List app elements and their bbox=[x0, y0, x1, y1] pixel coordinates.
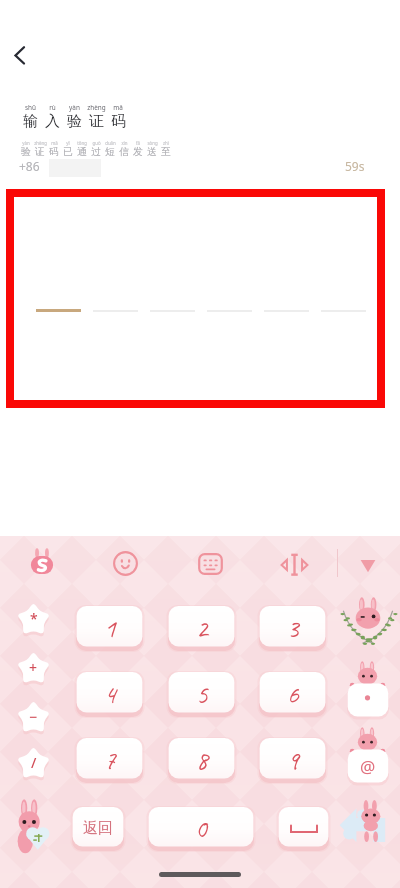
staticText: guò bbox=[92, 140, 101, 146]
staticText: 5 bbox=[196, 678, 208, 711]
staticText: 输 bbox=[23, 112, 38, 131]
staticText: − bbox=[29, 707, 38, 726]
staticText: 码 bbox=[49, 146, 59, 158]
staticText: yǐ bbox=[66, 140, 70, 146]
button[interactable]: 8 bbox=[168, 738, 235, 782]
staticText: * bbox=[30, 609, 38, 628]
staticText: xìn bbox=[121, 140, 128, 146]
button[interactable] bbox=[93, 274, 138, 312]
staticText: 信 bbox=[119, 146, 129, 158]
staticText: sòng bbox=[147, 140, 158, 146]
button[interactable]: 1 bbox=[76, 606, 143, 650]
staticText: + bbox=[29, 658, 38, 677]
staticText: fā bbox=[136, 140, 140, 146]
button[interactable]: 4 bbox=[76, 672, 143, 716]
staticText: duǎn bbox=[105, 140, 116, 146]
staticText: 9 bbox=[287, 744, 299, 777]
staticText: zhèng bbox=[87, 103, 106, 112]
staticText: mǎ bbox=[51, 140, 58, 146]
button[interactable] bbox=[36, 274, 81, 312]
staticText: mǎ bbox=[113, 103, 123, 112]
button[interactable]: 0 bbox=[148, 807, 254, 850]
button[interactable] bbox=[207, 274, 252, 312]
staticText: 4 bbox=[104, 678, 116, 711]
staticText: 过 bbox=[91, 146, 101, 158]
staticText: 发 bbox=[133, 146, 143, 158]
staticText: 入 bbox=[45, 112, 60, 131]
staticText: 证 bbox=[89, 112, 104, 131]
staticText: 返回 bbox=[83, 819, 113, 838]
staticText: zhì bbox=[163, 140, 169, 146]
button[interactable]: 5 bbox=[168, 672, 235, 716]
staticText: yàn bbox=[69, 103, 80, 112]
staticText: 验 bbox=[67, 112, 82, 131]
button[interactable]: Delete bbox=[340, 594, 396, 650]
staticText: 证 bbox=[35, 146, 45, 158]
staticText: +86 bbox=[19, 158, 40, 174]
button[interactable]: Input method settings bbox=[27, 547, 57, 577]
button[interactable]: + bbox=[15, 650, 52, 687]
staticText: / bbox=[31, 753, 37, 772]
staticText: 1 bbox=[104, 612, 116, 645]
button[interactable] bbox=[150, 274, 195, 312]
button[interactable]: 7 bbox=[76, 738, 143, 782]
staticText: rù bbox=[49, 103, 56, 112]
button[interactable]: 2 bbox=[168, 606, 235, 650]
button[interactable]: Space bbox=[278, 807, 329, 850]
staticText: yàn bbox=[22, 140, 30, 146]
button[interactable]: 6 bbox=[259, 672, 326, 716]
button[interactable]: At sign bbox=[342, 726, 393, 786]
button[interactable]: Enter bbox=[336, 794, 396, 854]
button[interactable]: 3 bbox=[259, 606, 326, 650]
staticText: 送 bbox=[147, 146, 157, 158]
staticText: 7 bbox=[104, 744, 116, 777]
staticText: 验 bbox=[21, 146, 31, 158]
button[interactable]: Emoji bbox=[113, 551, 138, 576]
staticText: 6 bbox=[287, 678, 299, 711]
staticText: 短 bbox=[105, 146, 115, 158]
button[interactable]: − bbox=[15, 699, 52, 736]
button[interactable]: 返回 bbox=[72, 807, 124, 850]
staticText: shū bbox=[25, 103, 36, 112]
staticText: @ bbox=[360, 755, 376, 778]
button[interactable]: / bbox=[15, 745, 52, 782]
staticText: 已 bbox=[63, 146, 73, 158]
button[interactable]: Dot bbox=[342, 660, 393, 720]
staticText: zhèng bbox=[34, 140, 47, 146]
staticText: 3 bbox=[287, 612, 299, 645]
staticText: 至 bbox=[161, 146, 171, 158]
staticText: tōng bbox=[77, 140, 87, 146]
button[interactable] bbox=[264, 274, 309, 312]
button[interactable]: Hide keyboard bbox=[352, 552, 384, 580]
button[interactable]: Switch keyboard bbox=[198, 553, 223, 575]
button[interactable]: 9 bbox=[259, 738, 326, 782]
staticText: 通 bbox=[77, 146, 87, 158]
button[interactable] bbox=[321, 274, 366, 312]
button[interactable]: Move cursor bbox=[281, 553, 308, 576]
staticText: 码 bbox=[111, 112, 126, 131]
staticText: 59s bbox=[345, 158, 365, 174]
button[interactable]: Symbols bbox=[9, 798, 57, 858]
staticText: 8 bbox=[196, 744, 208, 777]
button[interactable]: * bbox=[15, 601, 52, 638]
staticText: 0 bbox=[195, 812, 207, 845]
button[interactable]: 59s bbox=[325, 154, 385, 178]
button[interactable]: Back bbox=[2, 38, 38, 74]
staticText: 2 bbox=[196, 612, 208, 645]
